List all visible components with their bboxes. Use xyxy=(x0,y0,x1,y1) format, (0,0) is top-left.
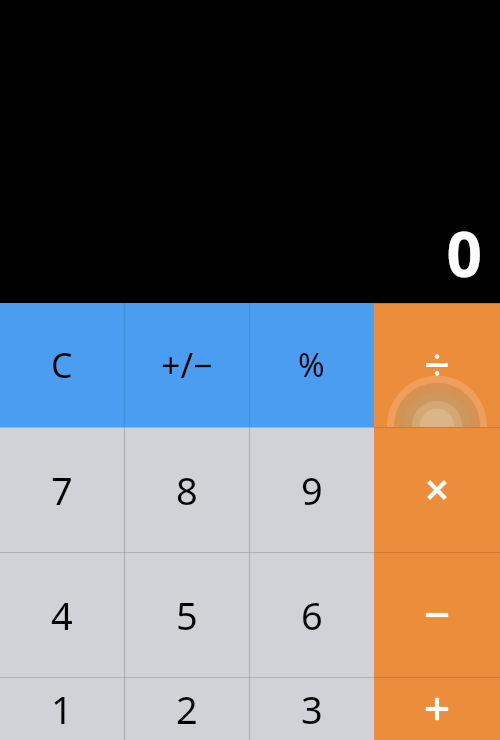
staticText: 8 xyxy=(176,464,198,516)
staticText: 2 xyxy=(176,683,198,735)
staticText: +/− xyxy=(161,342,213,388)
button[interactable]: 2 xyxy=(124,677,249,740)
button[interactable]: Subtract xyxy=(374,552,500,677)
button[interactable]: C xyxy=(0,303,124,427)
button[interactable]: Add xyxy=(374,677,500,740)
button[interactable]: 4 xyxy=(0,552,124,677)
button[interactable]: 1 xyxy=(0,677,124,740)
button[interactable]: 8 xyxy=(124,427,249,552)
staticText: 6 xyxy=(301,589,323,641)
button[interactable]: 3 xyxy=(249,677,374,740)
staticText: 9 xyxy=(301,464,323,516)
button[interactable]: Divide xyxy=(374,303,500,427)
button[interactable]: 7 xyxy=(0,427,124,552)
staticText: 1 xyxy=(51,683,73,735)
staticText: 0 xyxy=(446,211,482,295)
staticText: 5 xyxy=(176,589,198,641)
staticText: 4 xyxy=(51,589,73,641)
button[interactable]: 9 xyxy=(249,427,374,552)
button[interactable]: +/− xyxy=(124,303,249,427)
staticText: % xyxy=(298,343,325,387)
staticText: C xyxy=(51,342,73,388)
button[interactable]: 6 xyxy=(249,552,374,677)
button[interactable]: 5 xyxy=(124,552,249,677)
staticText: 7 xyxy=(51,464,73,516)
staticText: 3 xyxy=(301,683,323,735)
button[interactable]: % xyxy=(249,303,374,427)
button[interactable]: Multiply xyxy=(374,427,500,552)
